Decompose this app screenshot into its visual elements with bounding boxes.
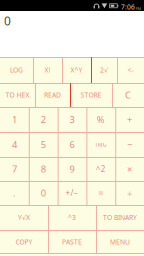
button[interactable]: C bbox=[112, 83, 144, 107]
button[interactable]: 1 bbox=[0, 107, 29, 132]
button[interactable]: 3 bbox=[58, 107, 86, 132]
button[interactable]: LOG bbox=[0, 57, 33, 83]
staticText: X! bbox=[44, 66, 50, 74]
staticText: − bbox=[127, 138, 132, 151]
button[interactable]: TO HEX bbox=[0, 83, 35, 107]
button[interactable]: TO BINARY bbox=[96, 205, 144, 230]
staticText: 1 bbox=[12, 113, 17, 126]
button[interactable]: . bbox=[0, 181, 29, 205]
button[interactable]: COPY bbox=[0, 230, 48, 254]
button[interactable]: 8 bbox=[29, 157, 58, 181]
button[interactable]: TRIG bbox=[86, 132, 115, 157]
staticText: ^2 bbox=[96, 164, 106, 174]
button[interactable]: X! bbox=[33, 57, 62, 83]
staticText: ÷ bbox=[127, 187, 132, 199]
button[interactable]: STORE bbox=[70, 83, 112, 107]
staticText: X^Y bbox=[70, 66, 82, 74]
staticText: 2 bbox=[41, 113, 46, 126]
staticText: +/− bbox=[65, 188, 78, 198]
button[interactable]: 4 bbox=[0, 132, 29, 157]
staticText: 0 bbox=[41, 187, 46, 199]
button[interactable]: % bbox=[86, 107, 115, 132]
staticText: TO HEX bbox=[5, 91, 29, 99]
staticText: 7:06 bbox=[121, 2, 135, 11]
button[interactable]: ^3 bbox=[48, 205, 96, 230]
staticText: 5 bbox=[41, 138, 46, 151]
button[interactable]: − bbox=[115, 132, 144, 157]
button[interactable]: 9 bbox=[58, 157, 86, 181]
staticText: 6 bbox=[69, 138, 74, 151]
button[interactable]: X^Y bbox=[62, 57, 91, 83]
staticText: COPY bbox=[15, 238, 32, 246]
staticText: 4 bbox=[12, 138, 17, 151]
staticText: 8 bbox=[41, 163, 46, 175]
staticText: 9 bbox=[69, 163, 74, 175]
button[interactable]: 7 bbox=[0, 157, 29, 181]
button[interactable]: PASTE bbox=[48, 230, 96, 254]
staticText: 3 bbox=[69, 113, 74, 126]
button[interactable]: ^2 bbox=[86, 157, 115, 181]
button[interactable]: MENU bbox=[96, 230, 144, 254]
staticText: × bbox=[127, 163, 132, 175]
staticText: ^3 bbox=[68, 213, 76, 222]
button[interactable]: 6 bbox=[58, 132, 86, 157]
staticText: 7 bbox=[12, 163, 17, 175]
staticText: LOG bbox=[10, 66, 23, 74]
staticText: % bbox=[97, 113, 105, 126]
staticText: TRIG bbox=[95, 141, 107, 148]
button[interactable]: 2√ bbox=[91, 57, 117, 83]
staticText: STORE bbox=[80, 91, 101, 99]
staticText: MENU bbox=[110, 238, 130, 246]
button[interactable]: <- bbox=[117, 57, 144, 83]
staticText: PASTE bbox=[62, 238, 82, 246]
button[interactable]: ÷ bbox=[115, 181, 144, 205]
staticText: C bbox=[125, 89, 131, 101]
button[interactable]: 0 bbox=[29, 181, 58, 205]
button[interactable]: Y√X bbox=[0, 205, 48, 230]
staticText: PM bbox=[136, 6, 142, 11]
staticText: . bbox=[13, 187, 16, 199]
staticText: + bbox=[127, 113, 132, 126]
button[interactable]: +/− bbox=[58, 181, 86, 205]
button[interactable]: 5 bbox=[29, 132, 58, 157]
staticText: TO BINARY bbox=[103, 213, 137, 222]
staticText: Y√X bbox=[18, 213, 30, 222]
staticText: <- bbox=[127, 66, 133, 74]
staticText: = bbox=[98, 187, 103, 199]
button[interactable]: READ bbox=[35, 83, 70, 107]
staticText: 2√ bbox=[100, 66, 108, 74]
button[interactable]: = bbox=[86, 181, 115, 205]
staticText: READ bbox=[44, 91, 61, 99]
button[interactable]: 2 bbox=[29, 107, 58, 132]
button[interactable]: × bbox=[115, 157, 144, 181]
button[interactable]: + bbox=[115, 107, 144, 132]
staticText: 0 bbox=[4, 13, 11, 29]
